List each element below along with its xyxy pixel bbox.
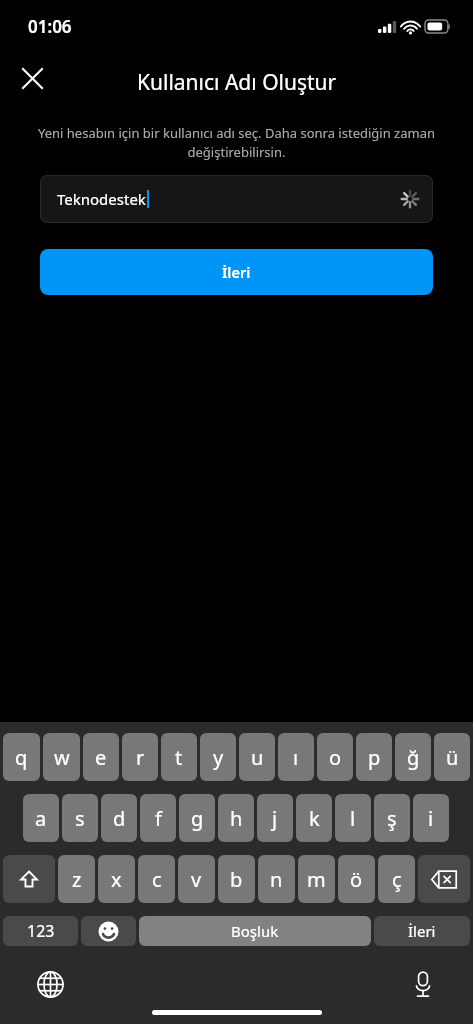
staticText: x [111,866,122,893]
button[interactable]: Backspace [418,855,470,903]
button[interactable]: 123 [3,916,78,946]
staticText: ı [293,744,299,771]
staticText: l [350,805,356,832]
staticText: q [15,744,28,771]
staticText: Teknodestek [57,189,146,209]
staticText: n [270,866,283,893]
staticText: f [155,805,162,832]
button[interactable]: w [43,733,80,781]
button[interactable]: x [98,855,135,903]
staticText: s [75,805,85,832]
button[interactable]: q [3,733,40,781]
button[interactable]: Emoji [81,916,136,946]
staticText: ü [446,744,459,771]
staticText: ğ [407,744,420,771]
button[interactable]: Change language [26,960,74,1008]
staticText: m [307,866,326,893]
staticText: d [113,805,126,832]
staticText: ö [350,866,363,893]
staticText: t [175,744,183,771]
staticText: z [72,866,82,893]
button[interactable]: ü [434,733,470,781]
staticText: 123 [27,920,55,942]
button[interactable]: u [239,733,275,781]
button[interactable]: f [140,794,176,842]
staticText: i [428,805,434,832]
button[interactable]: İleri [374,916,470,946]
button[interactable]: z [58,855,95,903]
staticText: İleri [408,921,436,941]
button[interactable]: g [179,794,215,842]
staticText: j [272,805,278,832]
staticText: e [95,744,107,771]
button[interactable]: t [161,733,197,781]
staticText: Yeni hesabın için bir kullanıcı adı seç.… [36,124,437,161]
button[interactable]: l [335,794,371,842]
button[interactable]: ç [378,855,415,903]
button[interactable]: p [356,733,392,781]
staticText: g [191,805,204,832]
button[interactable]: y [200,733,236,781]
button[interactable]: Voice input [399,960,447,1008]
staticText: a [35,805,47,832]
button[interactable]: Shift [3,855,55,903]
staticText: k [309,805,320,832]
button[interactable]: ş [374,794,410,842]
staticText: v [191,866,202,893]
staticText: p [368,744,381,771]
button[interactable]: Close [12,58,52,98]
staticText: 01:06 [28,15,72,38]
staticText: h [230,805,243,832]
button[interactable]: ö [338,855,375,903]
button[interactable]: n [258,855,295,903]
button[interactable]: i [413,794,449,842]
staticText: Boşluk [231,921,279,941]
button[interactable]: v [178,855,215,903]
staticText: İleri [222,262,251,282]
staticText: u [251,744,264,771]
staticText: o [329,744,342,771]
staticText: ç [392,866,402,893]
staticText: c [152,866,162,893]
button[interactable]: b [218,855,255,903]
button[interactable]: m [298,855,335,903]
button[interactable]: r [122,733,158,781]
staticText: Kullanıcı Adı Oluştur [137,68,337,97]
button[interactable]: Teknodestek [40,175,433,223]
staticText: b [230,866,243,893]
staticText: r [136,744,145,771]
button[interactable]: c [138,855,175,903]
button[interactable]: h [218,794,254,842]
button[interactable]: Boşluk [139,916,371,946]
button[interactable]: o [317,733,353,781]
button[interactable]: İleri [40,249,433,295]
button[interactable]: d [101,794,137,842]
button[interactable]: e [83,733,119,781]
staticText: ş [387,805,397,832]
button[interactable]: s [62,794,98,842]
button[interactable]: j [257,794,293,842]
button[interactable]: ı [278,733,314,781]
button[interactable]: ğ [395,733,431,781]
button[interactable]: k [296,794,332,842]
staticText: y [213,744,224,771]
button[interactable]: a [23,794,59,842]
staticText: w [54,744,70,771]
